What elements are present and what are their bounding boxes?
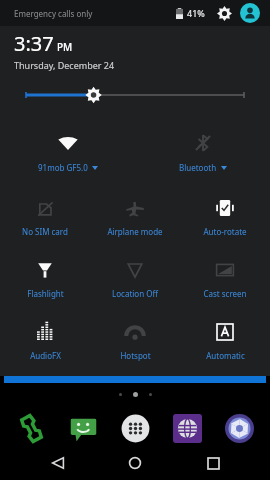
button[interactable]: Cast screen (180, 251, 270, 307)
staticText: Auto-rotate (203, 226, 247, 237)
button[interactable]: User (240, 3, 260, 23)
button[interactable]: Airplane mode (90, 189, 180, 245)
button[interactable]: Bluetooth (135, 121, 270, 183)
staticText: AudioFX (30, 350, 61, 361)
button[interactable]: Recents (193, 446, 233, 480)
staticText: Airplane mode (107, 226, 163, 237)
staticText: Cast screen (203, 288, 247, 299)
button[interactable]: Brightness (0, 83, 270, 107)
button[interactable]: Flashlight (0, 251, 90, 307)
button[interactable]: 91mob GF5.0 (0, 121, 135, 183)
staticText: Thursday, December 24 (14, 59, 115, 71)
staticText: Automatic (206, 350, 245, 361)
staticText: Flashlight (27, 288, 64, 299)
button[interactable]: Camera (220, 411, 258, 446)
button[interactable]: Browser (168, 411, 206, 446)
button[interactable]: Home (115, 446, 155, 480)
button[interactable]: No SIM card (0, 189, 90, 245)
staticText: 41% (187, 7, 205, 19)
button[interactable]: AudioFX (0, 313, 90, 369)
staticText: Location Off (112, 288, 158, 299)
button[interactable]: Phone (12, 411, 50, 446)
staticText: Emergency calls only (14, 8, 93, 19)
button[interactable]: Automatic (180, 313, 270, 369)
button[interactable]: Auto-rotate (180, 189, 270, 245)
staticText: 3:37 (14, 30, 54, 57)
button[interactable]: Messaging (64, 411, 102, 446)
button[interactable]: Back (38, 446, 78, 480)
staticText: 91mob GF5.0 (38, 162, 88, 173)
staticText: No SIM card (22, 226, 68, 237)
button[interactable]: Settings (214, 3, 234, 23)
button[interactable]: Apps (116, 411, 154, 446)
button[interactable]: Location Off (90, 251, 180, 307)
button[interactable]: Hotspot (90, 313, 180, 369)
staticText: Hotspot (120, 350, 151, 361)
staticText: PM (57, 40, 73, 54)
staticText: Bluetooth (179, 162, 217, 173)
